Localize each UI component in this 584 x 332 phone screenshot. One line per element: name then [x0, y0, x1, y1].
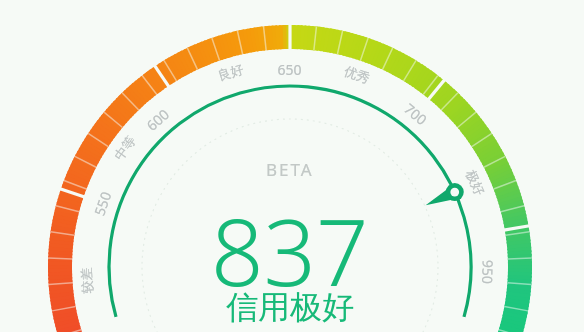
button[interactable]: Credit score gauge, 837, excellent: [0, 0, 584, 332]
